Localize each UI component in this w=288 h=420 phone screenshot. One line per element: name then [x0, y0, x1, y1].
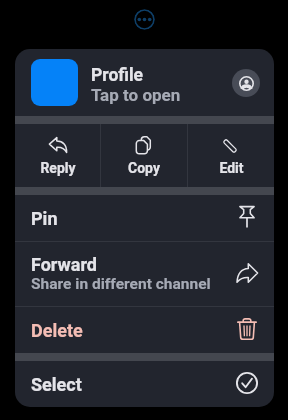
staticText: Edit	[219, 160, 244, 176]
staticText: Copy	[128, 160, 160, 176]
staticText: Tap to open	[91, 85, 181, 105]
button[interactable]: Forward	[15, 242, 274, 306]
other: Account	[232, 69, 260, 97]
other: Edit	[218, 134, 242, 158]
staticText: Reply	[40, 160, 76, 176]
staticText: Delete	[31, 320, 83, 341]
button[interactable]: Profile	[15, 49, 274, 116]
button[interactable]: Select	[15, 361, 274, 407]
staticText: Forward	[31, 254, 98, 275]
button[interactable]: Edit	[188, 124, 274, 187]
other: Forward	[235, 261, 259, 285]
button[interactable]: Delete	[15, 307, 274, 353]
staticText: Profile	[91, 65, 144, 86]
other: Reply	[46, 133, 70, 157]
staticText: Pin	[31, 208, 58, 229]
other: Delete	[235, 317, 259, 341]
other: Copy	[132, 133, 156, 157]
other: Select	[235, 371, 259, 395]
staticText: Select	[31, 374, 82, 395]
staticText: Share in different channel	[31, 275, 211, 293]
other: Pin	[235, 205, 259, 229]
button[interactable]: Pin	[15, 195, 274, 241]
button[interactable]: More options	[134, 9, 155, 30]
button[interactable]: Reply	[15, 124, 100, 187]
button[interactable]: Copy	[101, 124, 187, 187]
